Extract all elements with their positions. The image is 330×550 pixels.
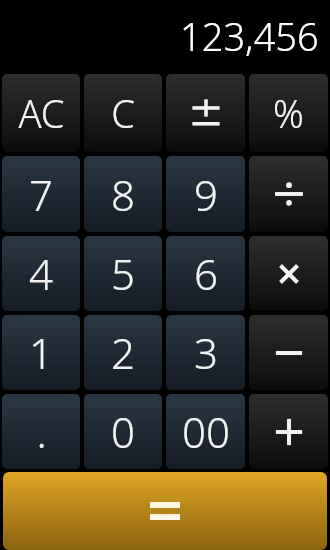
staticText: 5 <box>111 245 135 302</box>
button[interactable]: 0 <box>84 394 162 469</box>
button[interactable]: 8 <box>84 156 162 232</box>
staticText: 123,456 <box>180 10 319 62</box>
button[interactable]: AC <box>2 74 80 152</box>
staticText: % <box>273 87 304 139</box>
staticText: 1 <box>29 324 53 381</box>
staticText: 00 <box>182 403 230 460</box>
button[interactable]: C <box>84 74 162 152</box>
button[interactable]: 7 <box>2 156 80 232</box>
staticText: 6 <box>194 245 218 302</box>
staticText: 9 <box>194 166 218 223</box>
staticText: 7 <box>29 166 53 223</box>
staticText: 8 <box>111 166 135 223</box>
button[interactable]: 3 <box>166 315 245 390</box>
button[interactable]: 2 <box>84 315 162 390</box>
button[interactable]: 4 <box>2 236 80 311</box>
staticText: 0 <box>111 403 135 460</box>
staticText: 2 <box>111 324 135 381</box>
button[interactable]: Multiply <box>249 236 328 311</box>
staticText: AC <box>18 87 65 139</box>
button[interactable]: Plus minus <box>166 74 245 152</box>
button[interactable]: Divide <box>249 156 328 232</box>
button[interactable]: % <box>249 74 328 152</box>
button[interactable]: 00 <box>166 394 245 469</box>
staticText: . <box>36 403 47 460</box>
button[interactable]: Equals <box>3 472 327 550</box>
button[interactable]: Minus <box>249 315 328 390</box>
staticText: 3 <box>194 324 218 381</box>
button[interactable]: 5 <box>84 236 162 311</box>
button[interactable]: Plus <box>249 394 328 469</box>
button[interactable]: . <box>2 394 80 469</box>
staticText: C <box>111 87 135 139</box>
button[interactable]: 6 <box>166 236 245 311</box>
staticText: 4 <box>29 245 53 302</box>
button[interactable]: 9 <box>166 156 245 232</box>
button[interactable]: 1 <box>2 315 80 390</box>
